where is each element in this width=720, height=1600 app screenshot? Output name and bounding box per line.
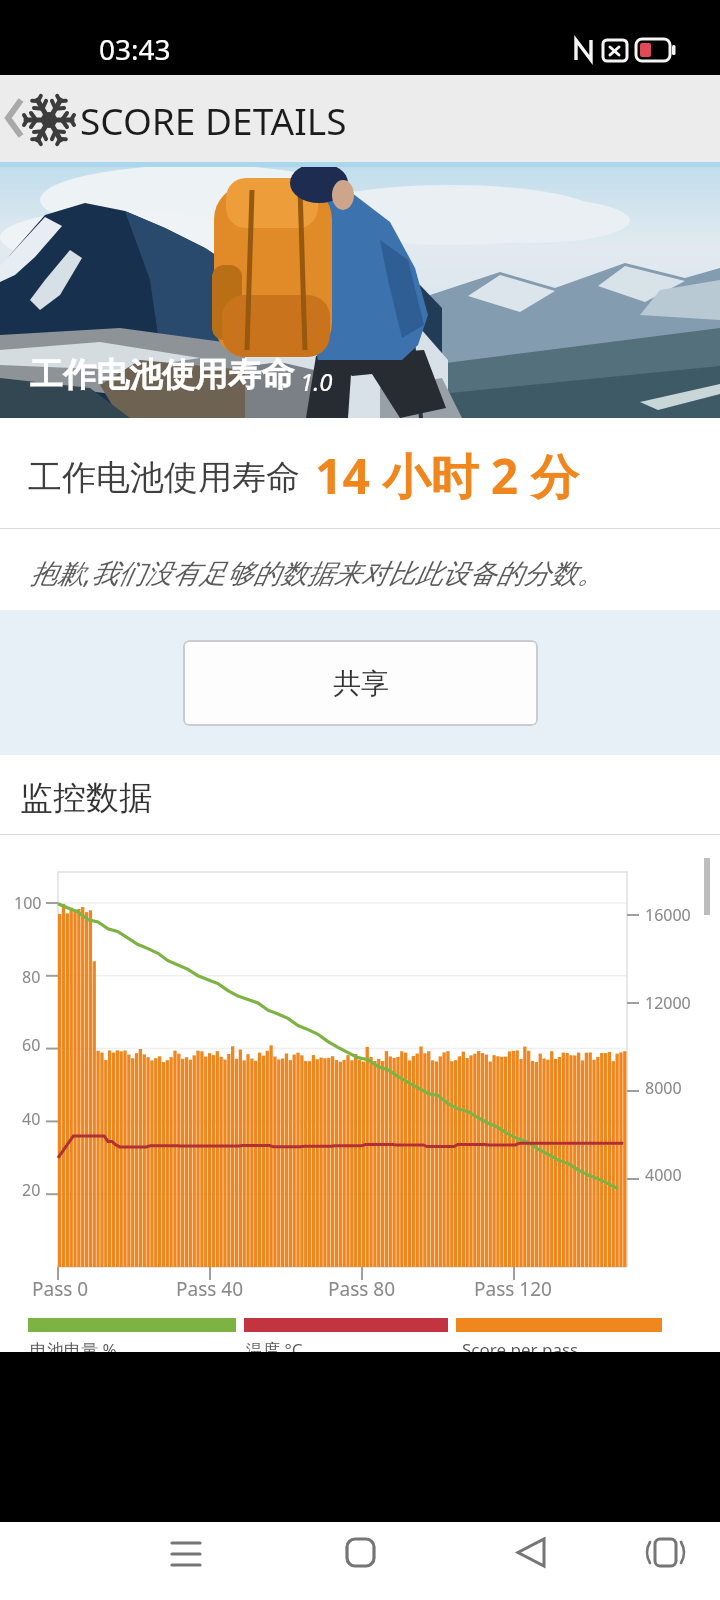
- staticText: 共享: [333, 666, 389, 701]
- staticText: 40: [22, 1108, 41, 1130]
- staticText: 抱歉,我们没有足够的数据来对比此设备的分数。: [30, 554, 604, 591]
- staticText: SCORE DETAILS: [80, 95, 347, 145]
- button[interactable]: [360, 1522, 540, 1600]
- staticText: Pass 80: [328, 1276, 396, 1302]
- staticText: 14 小时 2 分: [315, 443, 579, 509]
- staticText: 监控数据: [20, 777, 152, 819]
- button[interactable]: SCORE DETAILS: [0, 75, 720, 162]
- button[interactable]: 共享: [183, 640, 538, 726]
- staticText: Score per pass: [462, 1338, 579, 1352]
- staticText: 100: [14, 892, 42, 914]
- staticText: 电池电量 %: [30, 1338, 117, 1352]
- staticText: 4000: [645, 1164, 682, 1186]
- staticText: 8000: [645, 1077, 682, 1099]
- staticText: 80: [22, 966, 41, 988]
- staticText: 工作电池使用寿命: [30, 354, 294, 396]
- staticText: Pass 0: [32, 1276, 89, 1302]
- staticText: Pass 120: [474, 1276, 552, 1302]
- staticText: 工作电池使用寿命: [28, 456, 300, 499]
- staticText: 03:43: [99, 30, 171, 68]
- staticText: 温度 °C: [246, 1338, 303, 1352]
- staticText: 12000: [645, 992, 691, 1014]
- staticText: Pass 40: [176, 1276, 244, 1302]
- staticText: 20: [22, 1179, 41, 1201]
- staticText: 60: [22, 1034, 41, 1056]
- staticText: 16000: [645, 904, 691, 926]
- button[interactable]: [180, 1522, 360, 1600]
- button[interactable]: [540, 1522, 720, 1600]
- button[interactable]: [0, 1522, 180, 1600]
- staticText: 1.0: [300, 365, 333, 398]
